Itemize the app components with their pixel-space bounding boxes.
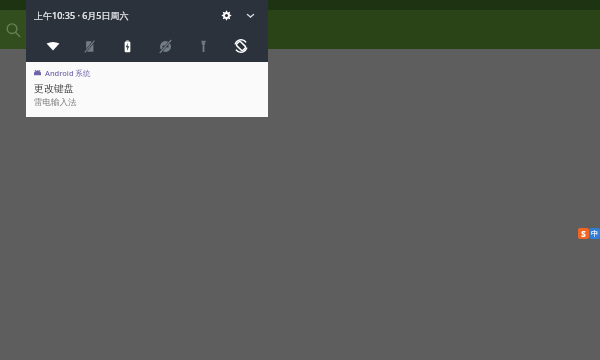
button[interactable]: Settings (214, 3, 238, 27)
staticText: 上午10:35 · 6月5日周六 (34, 9, 129, 21)
staticText: 中 (591, 229, 598, 238)
button[interactable]: Battery saver (108, 30, 146, 62)
button[interactable]: Auto rotate (222, 30, 260, 62)
staticText: 更改键盘 (34, 82, 74, 95)
button[interactable]: Android 系统 (26, 62, 268, 117)
button[interactable]: Input method (578, 228, 600, 239)
button[interactable]: Flashlight (184, 30, 222, 62)
button[interactable]: Search (0, 10, 26, 49)
button[interactable]: Do not disturb (146, 30, 184, 62)
staticText: S (581, 228, 586, 239)
button[interactable]: Expand (238, 3, 262, 27)
button[interactable]: Mobile data (71, 30, 108, 62)
staticText: Android 系统 (45, 68, 91, 78)
staticText: 雷电输入法 (34, 97, 77, 108)
button[interactable]: Wi-Fi (34, 30, 71, 62)
